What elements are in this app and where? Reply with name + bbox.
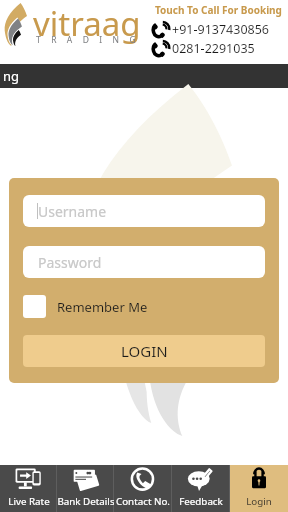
- button[interactable]: Live Rate: [0, 465, 57, 512]
- staticText: Remember Me: [57, 298, 148, 316]
- button[interactable]: LOGIN: [23, 335, 265, 367]
- staticText: Touch To Call For Booking: [155, 3, 282, 17]
- button[interactable]: Contact No.: [114, 465, 172, 512]
- staticText: ng: [3, 67, 20, 85]
- staticText: Bank Details: [57, 495, 114, 508]
- button[interactable]: Login: [230, 465, 288, 512]
- staticText: 0281-2291035: [172, 40, 255, 57]
- button[interactable]: Remember Me: [23, 295, 148, 318]
- staticText: T R A D I N G: [36, 34, 140, 46]
- button[interactable]: Bank Details: [57, 465, 114, 512]
- staticText: Username: [38, 202, 107, 221]
- staticText: Contact No.: [116, 495, 170, 508]
- button[interactable]: +91-9137430856: [153, 21, 269, 38]
- button[interactable]: Username: [23, 195, 265, 227]
- staticText: Live Rate: [8, 495, 50, 508]
- staticText: Password: [38, 253, 102, 272]
- button[interactable]: Feedback: [172, 465, 230, 512]
- staticText: +91-9137430856: [172, 21, 269, 38]
- staticText: vitraag: [33, 1, 141, 46]
- button[interactable]: 0281-2291035: [153, 40, 255, 57]
- button[interactable]: Password: [23, 246, 265, 278]
- staticText: Feedback: [179, 495, 223, 508]
- staticText: LOGIN: [121, 341, 168, 361]
- staticText: Login: [246, 495, 272, 508]
